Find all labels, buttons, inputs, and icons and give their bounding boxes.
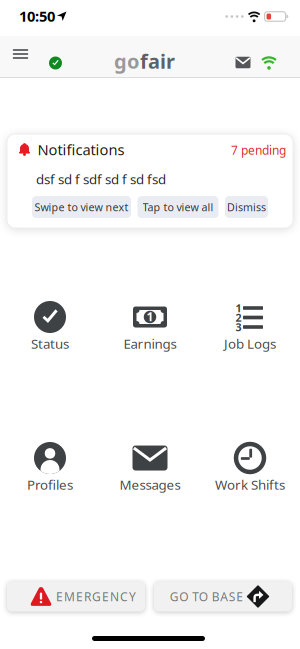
button[interactable]: Dismiss — [225, 196, 268, 218]
staticText: go — [114, 48, 140, 74]
button[interactable]: Profiles — [5, 442, 95, 500]
button[interactable]: Menu — [8, 44, 32, 64]
staticText: Messages — [119, 476, 180, 493]
button[interactable]: Status — [5, 301, 95, 359]
button[interactable]: EMERGENCY — [7, 581, 145, 611]
button[interactable]: Connection — [261, 55, 276, 70]
button[interactable]: Messages — [105, 442, 195, 500]
staticText: 3 — [235, 320, 241, 334]
staticText: 1 — [235, 301, 241, 315]
staticText: Status — [31, 335, 69, 352]
staticText: Dismiss — [227, 200, 266, 214]
button[interactable]: 1 — [105, 301, 195, 359]
staticText: fair — [140, 48, 175, 74]
staticText: 7 pending — [231, 142, 286, 158]
staticText: EMERGENCY — [56, 588, 136, 604]
button[interactable]: Tap to view all — [137, 196, 218, 218]
staticText: GO TO BASE — [170, 588, 243, 604]
staticText: dsf sd f sdf sd f sd fsd — [36, 170, 166, 188]
button[interactable]: GO TO BASE — [154, 581, 292, 611]
staticText: Swipe to view next — [34, 200, 128, 214]
button[interactable]: Messages — [235, 57, 250, 68]
button[interactable]: 1 — [205, 301, 295, 359]
staticText: 2 — [235, 310, 241, 325]
button[interactable]: Status OK — [49, 56, 62, 69]
button[interactable]: Work Shifts — [205, 442, 295, 500]
staticText: 10:50 — [19, 6, 55, 26]
staticText: Notifications — [37, 140, 124, 159]
staticText: Job Logs — [224, 335, 276, 352]
staticText: Tap to view all — [142, 200, 213, 214]
staticText: Work Shifts — [215, 476, 285, 493]
staticText: 1 — [146, 309, 153, 324]
staticText: Earnings — [123, 335, 176, 352]
staticText: Profiles — [27, 476, 73, 493]
button[interactable]: Swipe to view next — [32, 196, 131, 218]
